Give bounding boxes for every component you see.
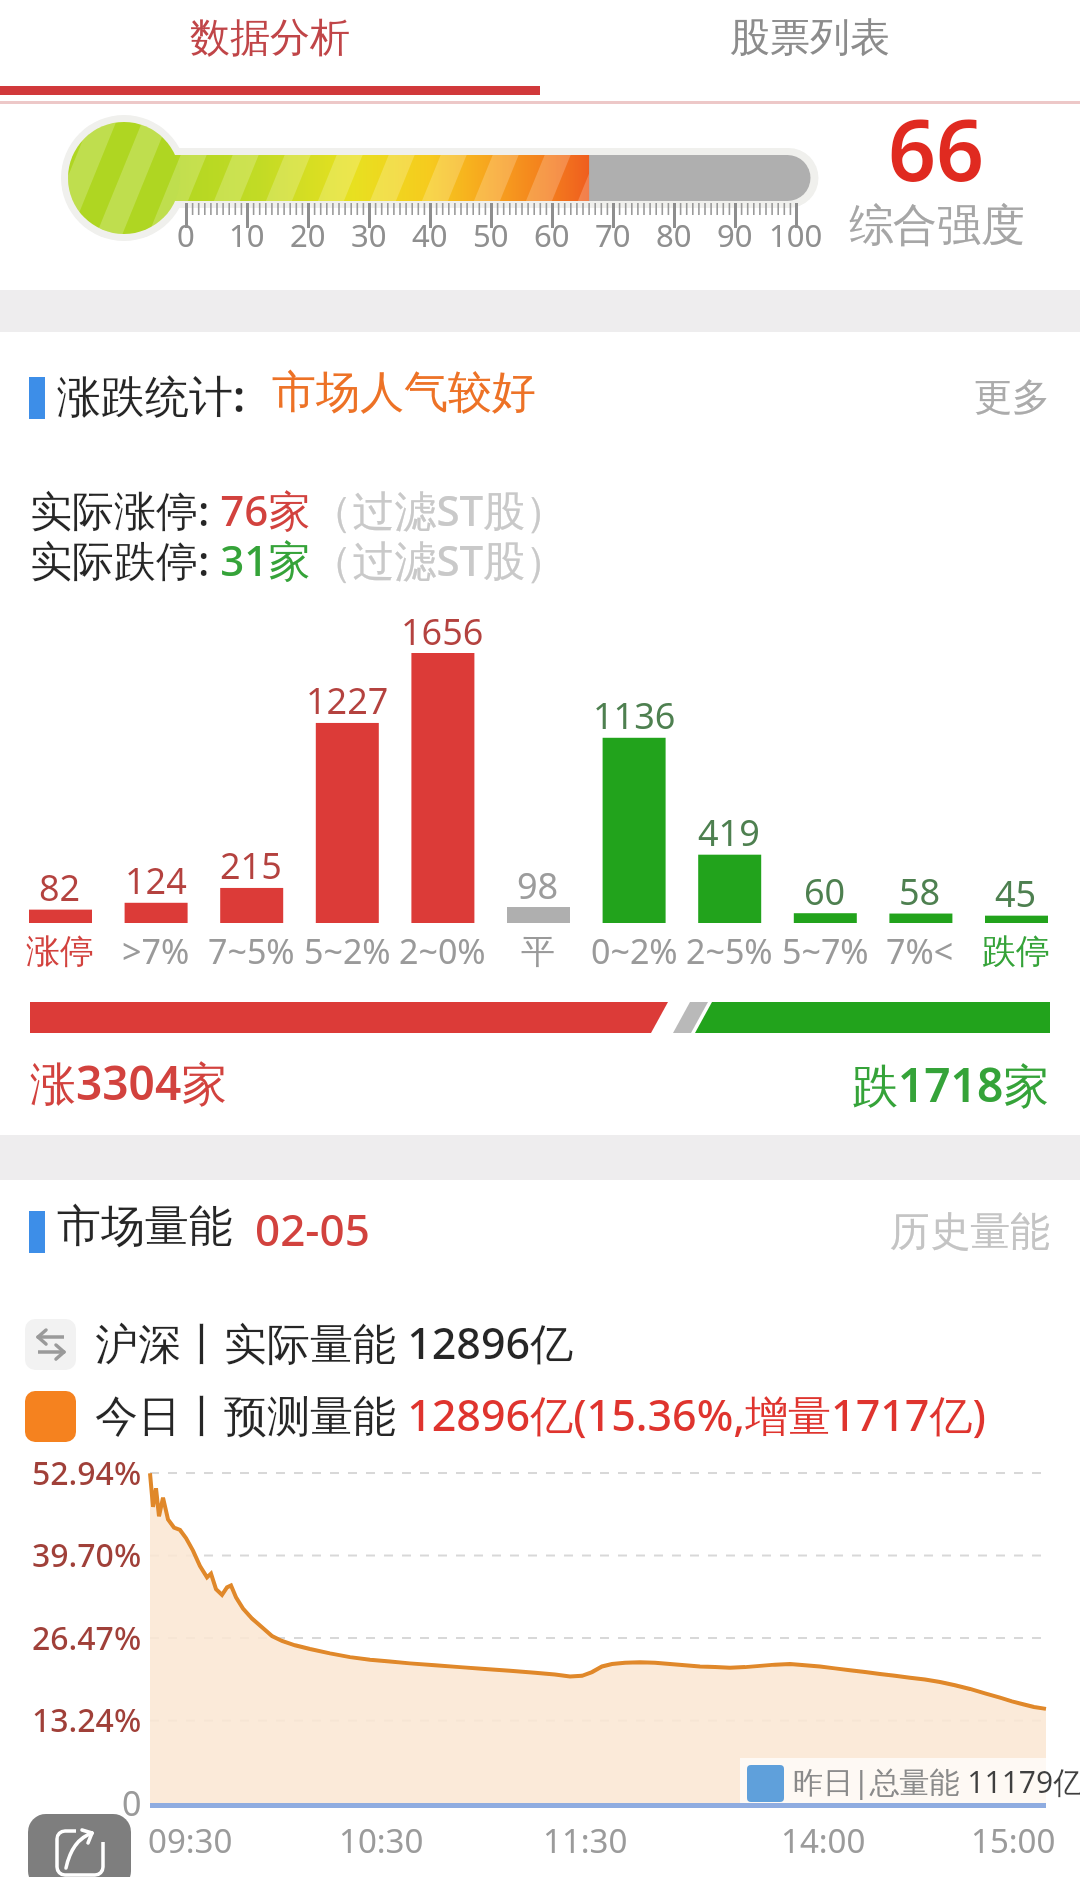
staticText: 沪深丨实际量能 12896亿 [95, 1313, 574, 1372]
staticText: 14:00 [781, 1818, 866, 1863]
staticText: 419 [698, 808, 760, 852]
staticText: 60 [534, 214, 570, 256]
staticText: 09:30 [148, 1818, 233, 1863]
staticText: >7% [122, 928, 190, 974]
staticText: 60 [804, 867, 846, 911]
staticText: 市场人气较好 [272, 365, 536, 420]
staticText: 26.47% [32, 1616, 142, 1660]
staticText: 50 [473, 214, 509, 256]
staticText: 66 [888, 91, 985, 201]
button[interactable]: 数据分析 [0, 0, 540, 74]
staticText: 5~2% [304, 928, 391, 974]
staticText: 今日丨预测量能 12896亿(15.36%,增量1717亿) [95, 1385, 986, 1444]
staticText: 0 [122, 1780, 142, 1826]
button[interactable]: 历史量能 [840, 1204, 1050, 1258]
staticText: 更多 [974, 373, 1050, 421]
staticText: 历史量能 [890, 1206, 1050, 1256]
staticText: 52.94% [32, 1451, 142, 1495]
staticText: 昨日|总量能 11179亿 [793, 1761, 1080, 1802]
staticText: 股票列表 [730, 12, 890, 62]
button[interactable]: 更多 [940, 370, 1050, 424]
staticText: 实际跌停: 31家（过滤ST股） [30, 531, 568, 588]
staticText: 1227 [306, 676, 389, 720]
staticText: 涨3304家 [30, 1051, 228, 1114]
staticText: 124 [125, 856, 187, 900]
button[interactable] [28, 1814, 131, 1877]
staticText: 1136 [593, 691, 676, 735]
staticText: 跌1718家 [852, 1053, 1050, 1116]
staticText: 10 [229, 214, 265, 256]
staticText: 2~0% [399, 928, 486, 974]
staticText: 20 [290, 214, 326, 256]
staticText: 2~5% [686, 928, 773, 974]
staticText: 数据分析 [190, 12, 350, 62]
staticText: 100 [769, 214, 823, 256]
staticText: 7%< [886, 928, 954, 974]
staticText: 82 [39, 863, 81, 907]
staticText: 跌停 [982, 930, 1050, 973]
staticText: 215 [220, 841, 282, 885]
staticText: 39.70% [32, 1533, 142, 1577]
staticText: 45 [995, 869, 1037, 913]
staticText: 5~7% [782, 928, 869, 974]
staticText: 02-05 [255, 1199, 370, 1259]
staticText: 实际涨停: 76家（过滤ST股） [30, 481, 568, 538]
staticText: 平 [521, 930, 555, 973]
staticText: 98 [517, 861, 559, 905]
staticText: 58 [899, 867, 941, 911]
button[interactable]: 股票列表 [540, 0, 1080, 74]
staticText: 市场量能 [57, 1199, 233, 1254]
staticText: 7~5% [208, 928, 295, 974]
staticText: 70 [595, 214, 631, 256]
staticText: 30 [351, 214, 387, 256]
staticText: 0~2% [591, 928, 678, 974]
staticText: 10:30 [339, 1818, 424, 1863]
staticText: 40 [412, 214, 448, 256]
staticText: 涨停 [26, 930, 94, 973]
staticText: 90 [717, 214, 753, 256]
staticText: 综合强度 [849, 198, 1025, 248]
staticText: 涨跌统计: [57, 365, 246, 425]
staticText: 1656 [401, 607, 484, 651]
staticText: 15:00 [971, 1818, 1056, 1863]
staticText: 80 [656, 214, 692, 256]
staticText: 0 [177, 214, 195, 256]
staticText: 11:30 [543, 1818, 628, 1863]
staticText: 13.24% [32, 1698, 142, 1742]
